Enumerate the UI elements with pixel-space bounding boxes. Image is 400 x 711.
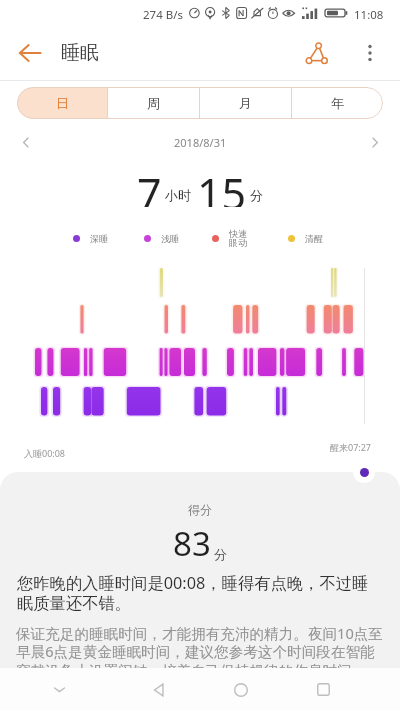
button[interactable]: 年	[292, 87, 383, 119]
staticText: 周	[147, 95, 160, 111]
staticText: 83	[173, 521, 211, 566]
button[interactable]: Recent apps	[282, 668, 364, 711]
button[interactable]: 月	[200, 87, 291, 119]
staticText: 11:08	[354, 7, 384, 23]
staticText: 分	[250, 187, 263, 203]
button[interactable]: Previous day	[10, 126, 42, 158]
staticText: 您昨晚的入睡时间是00:08，睡得有点晚，不过睡眠质量还不错。	[17, 572, 379, 614]
button[interactable]: Hide keyboard	[0, 668, 118, 711]
staticText: 浅睡	[161, 233, 179, 244]
button[interactable]: Back	[118, 668, 200, 711]
button[interactable]: More options	[348, 31, 392, 75]
staticText: 快速 眼动	[229, 228, 247, 249]
staticText: 日	[56, 95, 69, 111]
staticText: 分	[214, 546, 227, 562]
staticText: 月	[239, 95, 252, 111]
staticText: 入睡00:08	[24, 447, 66, 459]
button[interactable]: 日	[17, 87, 107, 119]
staticText: 274 B/s	[143, 7, 183, 23]
staticText: 清醒	[305, 233, 323, 244]
staticText: 保证充足的睡眠时间，才能拥有充沛的精力。夜间10点至早晨6点是黄金睡眠时间，建议…	[16, 623, 389, 680]
staticText: 得分	[188, 502, 212, 517]
button[interactable]: Back	[8, 31, 52, 75]
button[interactable]: Home	[200, 668, 282, 711]
staticText: 睡眠	[61, 41, 99, 65]
button[interactable]: Share	[294, 31, 338, 75]
staticText: 15	[197, 164, 247, 207]
staticText: 深睡	[90, 233, 108, 244]
staticText: 2018/8/31	[174, 135, 227, 150]
staticText: 小时	[165, 187, 191, 203]
button[interactable]: Next day	[358, 126, 390, 158]
staticText: 年	[331, 95, 344, 111]
staticText: 7	[137, 164, 162, 207]
staticText: 醒来07:27	[330, 441, 372, 453]
button[interactable]: 周	[108, 87, 199, 119]
